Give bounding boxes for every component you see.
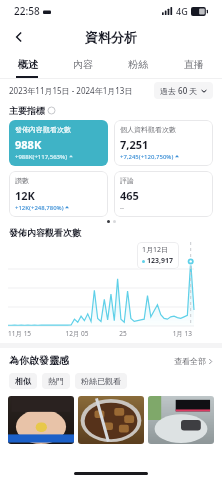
button[interactable]: Inspiration video 3	[148, 396, 214, 444]
staticText: --	[120, 204, 124, 212]
staticText: 988K	[15, 137, 42, 152]
staticText: 1月12日	[142, 245, 169, 255]
staticText: 123,917	[147, 256, 174, 266]
button[interactable]: Inspiration video 1	[8, 396, 74, 444]
staticText: +988K(+117,563%)	[15, 153, 68, 161]
staticText: 評論	[120, 176, 134, 185]
staticText: 465	[120, 188, 139, 203]
staticText: 資料分析	[85, 29, 137, 45]
button[interactable]: Inspiration video 2	[78, 396, 144, 444]
button[interactable]: 讚數	[9, 171, 108, 217]
button[interactable]: 發佈內容觀看次數	[9, 120, 108, 166]
staticText: 25	[100, 329, 146, 338]
staticText: 7,251	[120, 137, 149, 152]
staticText: 發佈內容觀看次數	[15, 125, 71, 134]
button[interactable]: 查看全部	[174, 356, 213, 366]
staticText: 12月 05	[54, 329, 100, 338]
button[interactable]: 評論	[114, 171, 213, 217]
staticText: 為你啟發靈感	[9, 354, 69, 367]
staticText: 概述	[18, 58, 38, 71]
staticText: +12K(+248,780%)	[15, 204, 64, 212]
staticText: 2023年11月15日 - 2024年1月13日	[9, 85, 133, 96]
staticText: 22:58	[14, 4, 40, 18]
button[interactable]: 粉絲已觀看	[75, 373, 127, 389]
staticText: 讚數	[15, 176, 29, 185]
button[interactable]: Back	[6, 24, 32, 50]
staticText: 1月 13	[146, 329, 192, 338]
button[interactable]: 概述	[0, 52, 55, 76]
staticText: 相似	[15, 376, 31, 386]
staticText: 4G	[176, 5, 188, 17]
staticText: +7,245(+120,750%)	[120, 153, 174, 161]
staticText: 個人資料觀看次數	[120, 125, 176, 134]
staticText: 12K	[15, 188, 35, 203]
staticText: 粉絲	[128, 58, 148, 71]
staticText: 過去 60 天	[160, 85, 198, 96]
button[interactable]: 直播	[166, 52, 222, 76]
staticText: 直播	[184, 58, 204, 71]
button[interactable]: 個人資料觀看次數	[114, 120, 213, 166]
button[interactable]: 熱門	[42, 373, 70, 389]
staticText: 熱門	[48, 376, 64, 386]
button[interactable]: 內容	[55, 52, 110, 76]
staticText: 11月 15	[8, 329, 54, 338]
staticText: 粉絲已觀看	[81, 376, 121, 386]
button[interactable]: 相似	[9, 373, 37, 389]
staticText: 內容	[73, 58, 93, 71]
staticText: 查看全部	[174, 356, 206, 366]
staticText: 主要指標	[9, 105, 45, 116]
button[interactable]: 過去 60 天	[154, 82, 213, 99]
button[interactable]: 粉絲	[110, 52, 166, 76]
staticText: 發佈內容觀看次數	[9, 227, 81, 238]
